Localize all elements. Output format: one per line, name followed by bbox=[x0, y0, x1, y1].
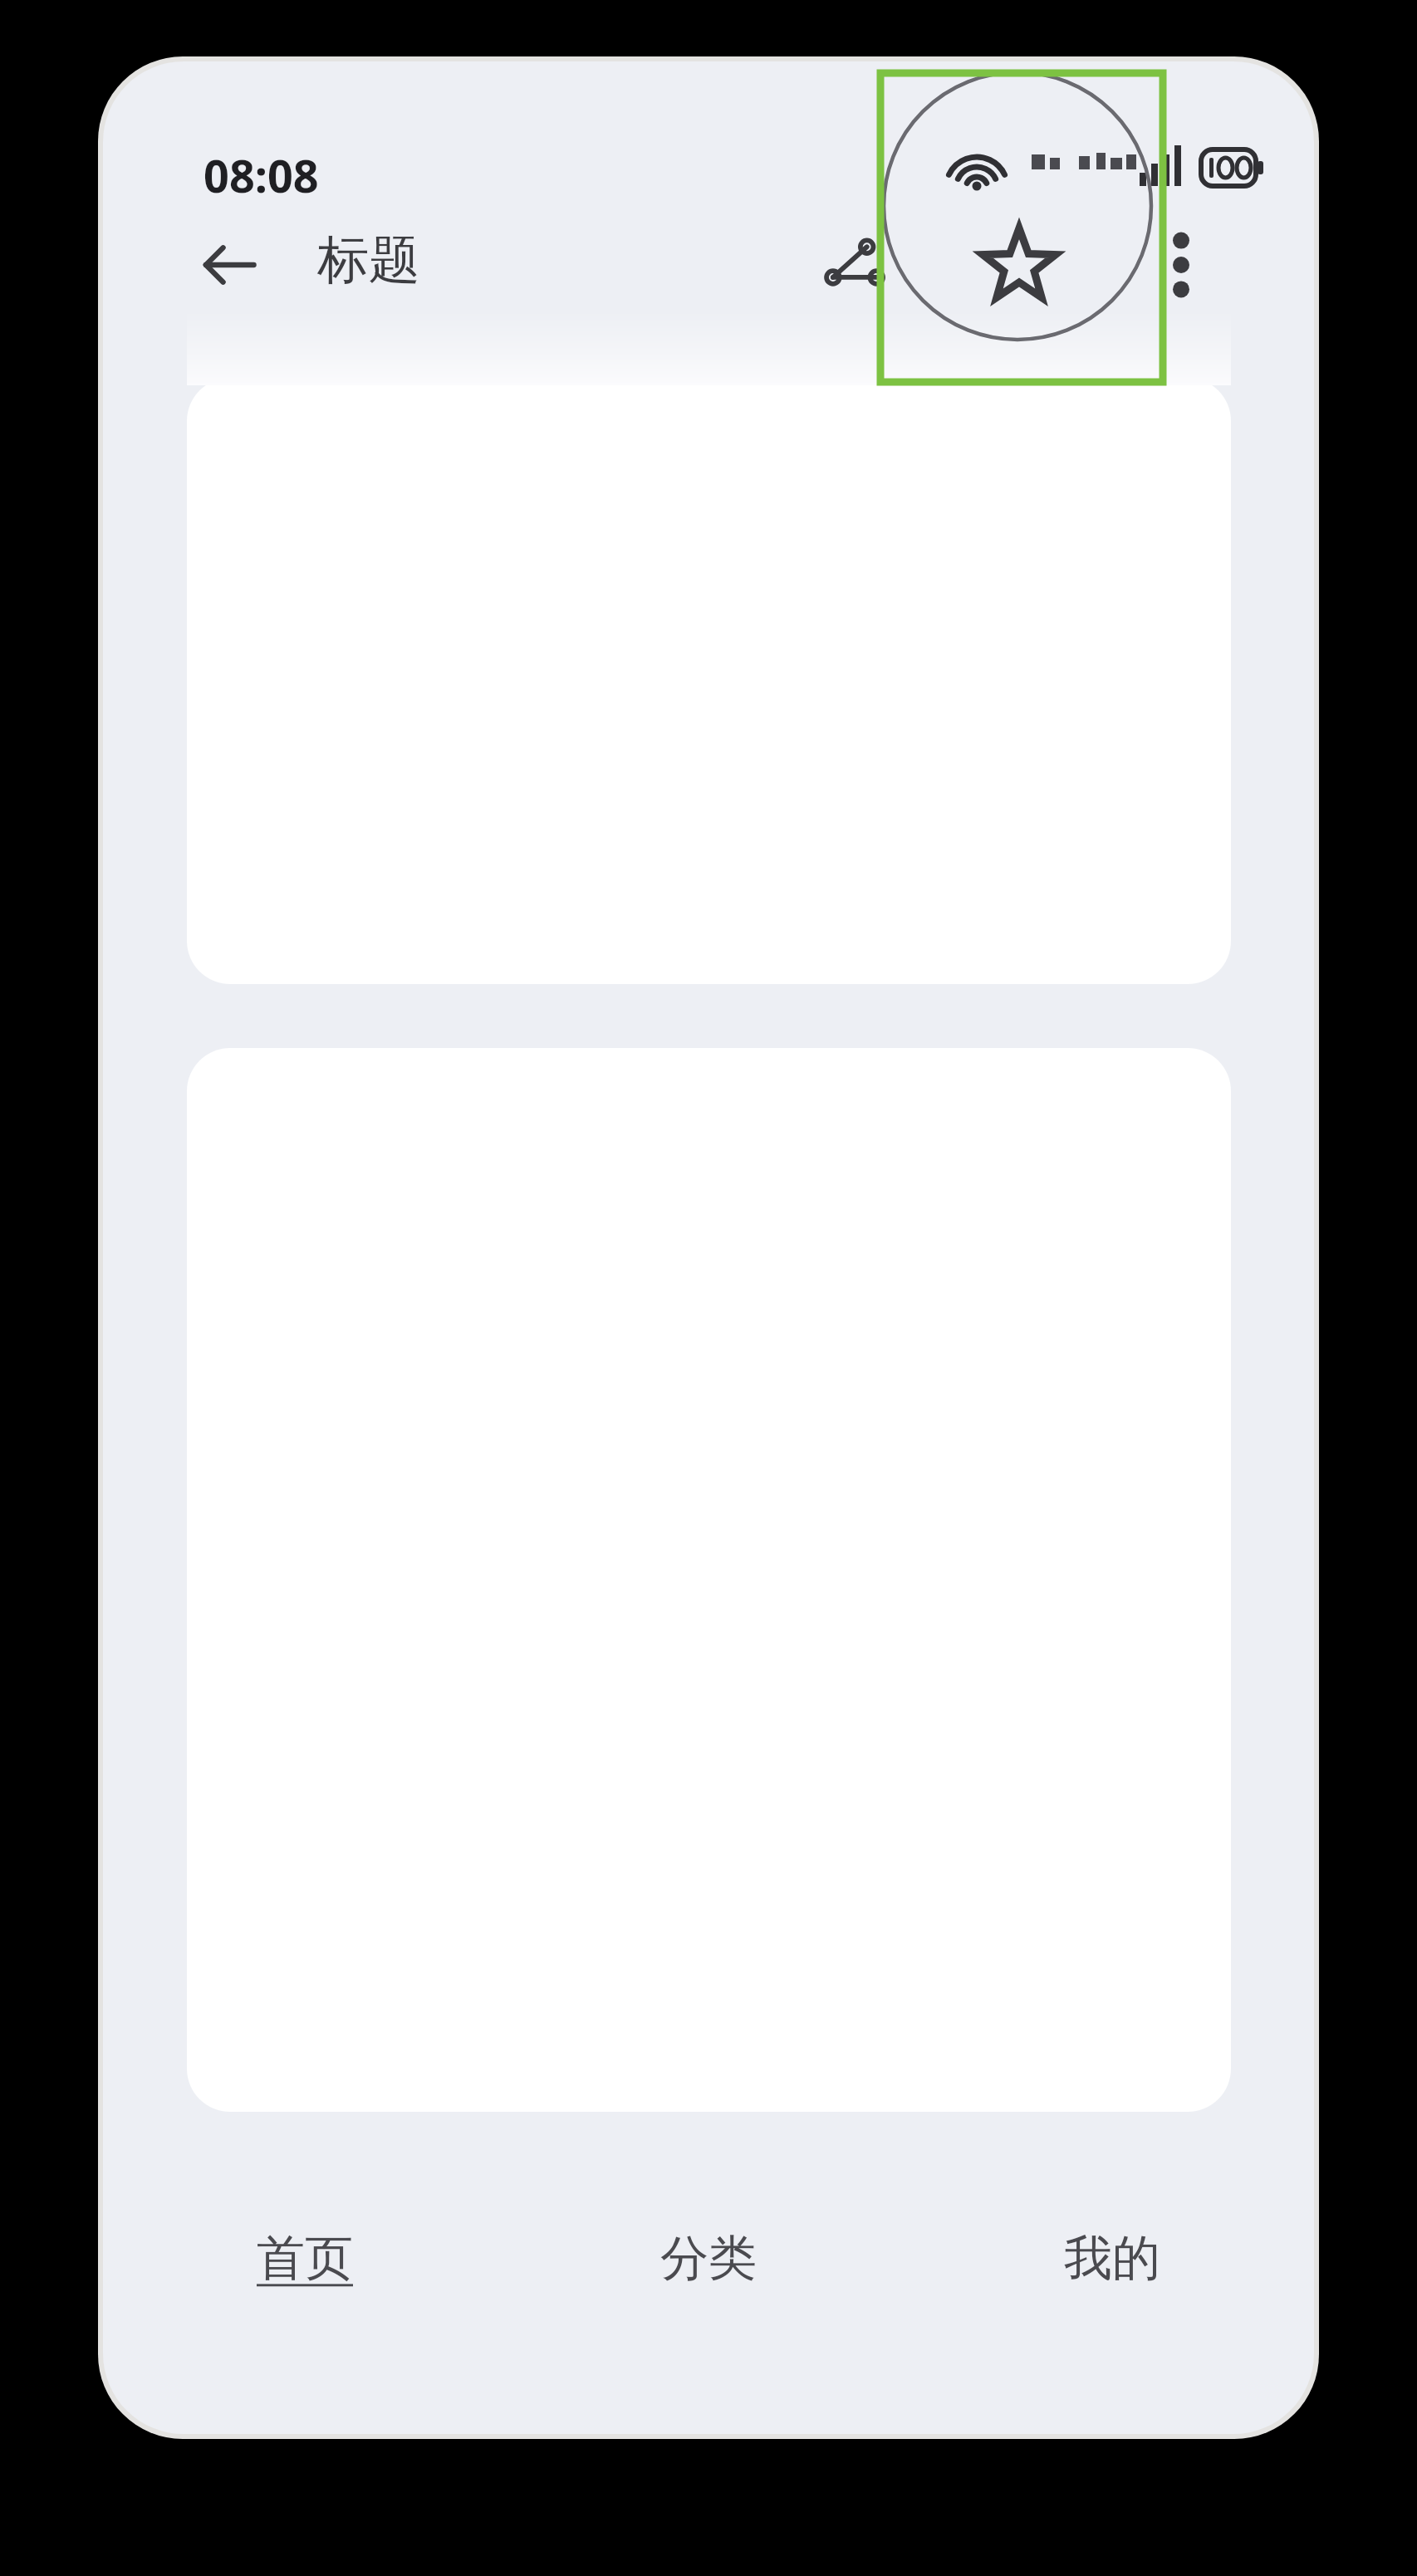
staticText: 我的 bbox=[1064, 2228, 1160, 2289]
staticText: 08:08 bbox=[203, 144, 319, 206]
button[interactable]: 首页 bbox=[103, 2171, 507, 2345]
staticText: 标题 bbox=[317, 228, 420, 292]
button[interactable]: Favorite bbox=[961, 207, 1077, 323]
button[interactable]: 我的 bbox=[910, 2171, 1314, 2345]
button[interactable]: 分类 bbox=[507, 2171, 910, 2345]
button[interactable] bbox=[187, 378, 1231, 984]
button[interactable]: Back bbox=[171, 207, 287, 323]
staticText: 分类 bbox=[660, 2228, 757, 2289]
button[interactable]: More options bbox=[1123, 207, 1239, 323]
button[interactable]: Share bbox=[794, 207, 910, 323]
staticText: 首页 bbox=[257, 2228, 353, 2289]
